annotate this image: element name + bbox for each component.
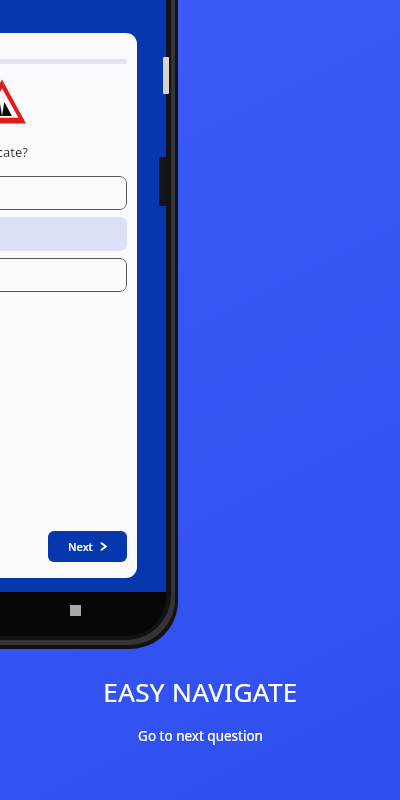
staticText: EASY NAVIGATE xyxy=(103,674,298,709)
staticText: Go to next question xyxy=(138,727,263,745)
staticText: What does this sign indicate? xyxy=(0,143,28,161)
button[interactable]: Slippery road ahead xyxy=(0,176,127,210)
button[interactable]: Next xyxy=(48,531,127,562)
button[interactable]: Power button xyxy=(163,57,169,94)
button[interactable]: Steep hill downwards xyxy=(0,258,127,292)
staticText: Next xyxy=(68,539,93,554)
